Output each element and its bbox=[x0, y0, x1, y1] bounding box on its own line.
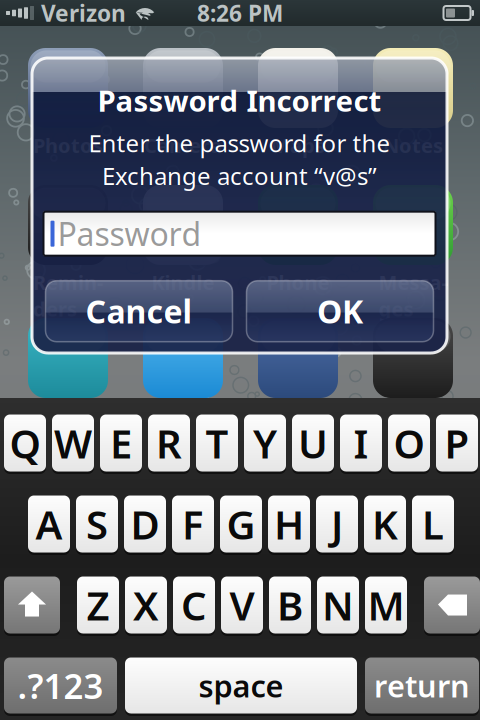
button[interactable]: B bbox=[269, 575, 311, 635]
staticText: Photos bbox=[33, 132, 103, 159]
button[interactable]: J bbox=[316, 494, 358, 554]
button[interactable]: S bbox=[76, 494, 118, 554]
button[interactable]: space bbox=[125, 656, 357, 715]
button[interactable]: Cancel bbox=[45, 281, 232, 342]
staticText: U bbox=[298, 416, 328, 469]
button[interactable]: G bbox=[220, 494, 262, 554]
button[interactable]: Shift bbox=[4, 575, 60, 635]
button[interactable]: D bbox=[124, 494, 166, 554]
staticText: Y bbox=[253, 416, 277, 469]
staticText: Messages bbox=[378, 269, 447, 322]
staticText: K bbox=[372, 497, 398, 550]
staticText: .?123 bbox=[17, 662, 103, 708]
button[interactable]: T bbox=[196, 413, 238, 473]
button[interactable]: X bbox=[125, 575, 167, 635]
staticText: Verizon bbox=[41, 0, 126, 28]
button[interactable]: K bbox=[364, 494, 406, 554]
button[interactable]: W bbox=[52, 413, 94, 473]
staticText: return bbox=[374, 665, 470, 706]
button[interactable]: L bbox=[412, 494, 454, 554]
staticText: Phone bbox=[266, 269, 329, 296]
staticText: A bbox=[35, 497, 62, 550]
button[interactable]: N bbox=[317, 575, 359, 635]
staticText: Q bbox=[9, 416, 40, 469]
staticText: Camera bbox=[144, 132, 222, 159]
staticText: Facebook bbox=[259, 402, 336, 455]
staticText: Notes bbox=[383, 132, 443, 159]
staticText: space bbox=[198, 665, 283, 706]
button[interactable]: Z bbox=[77, 575, 119, 635]
staticText: D bbox=[130, 497, 159, 550]
staticText: X bbox=[133, 578, 159, 631]
staticText: Exchange account “v@s” bbox=[102, 160, 377, 192]
button[interactable]: return bbox=[365, 656, 479, 715]
staticText: G bbox=[226, 497, 255, 550]
staticText: S bbox=[86, 497, 108, 550]
staticText: Twitter bbox=[146, 402, 219, 429]
staticText: P bbox=[444, 416, 469, 469]
button[interactable]: V bbox=[221, 575, 263, 635]
staticText: Password bbox=[57, 212, 201, 255]
staticText: Enter the password for the bbox=[88, 127, 390, 159]
button[interactable]: I bbox=[340, 413, 382, 473]
staticText: T bbox=[205, 416, 228, 469]
staticText: R bbox=[156, 416, 182, 469]
staticText: C bbox=[181, 578, 207, 631]
staticText: M bbox=[367, 578, 404, 631]
button[interactable]: U bbox=[292, 413, 334, 473]
staticText: Z bbox=[86, 578, 109, 631]
button[interactable]: C bbox=[173, 575, 215, 635]
staticText: Maps bbox=[271, 132, 325, 159]
button[interactable]: H bbox=[268, 494, 310, 554]
staticText: E bbox=[110, 416, 132, 469]
staticText: F bbox=[182, 497, 204, 550]
staticText: L bbox=[422, 497, 444, 550]
button[interactable]: .?123 bbox=[4, 656, 117, 715]
button[interactable]: Y bbox=[244, 413, 286, 473]
staticText: OK bbox=[317, 290, 363, 332]
button[interactable]: E bbox=[100, 413, 142, 473]
staticText: I bbox=[353, 416, 368, 469]
button[interactable]: O bbox=[388, 413, 430, 473]
staticText: H bbox=[274, 497, 304, 550]
staticText: O bbox=[393, 416, 424, 469]
staticText: Google bbox=[377, 402, 448, 429]
staticText: W bbox=[54, 416, 92, 469]
staticText: Cancel bbox=[85, 290, 192, 332]
staticText: J bbox=[331, 497, 343, 550]
button[interactable]: F bbox=[172, 494, 214, 554]
staticText: Kindle bbox=[151, 269, 214, 296]
button[interactable]: A bbox=[28, 494, 70, 554]
staticText: 8:26 PM bbox=[197, 0, 283, 28]
button[interactable]: P bbox=[436, 413, 478, 473]
staticText: N bbox=[322, 578, 354, 631]
staticText: GroupMe bbox=[34, 402, 102, 455]
staticText: Password Incorrect bbox=[97, 81, 381, 120]
button[interactable]: M bbox=[365, 575, 407, 635]
button[interactable]: Delete bbox=[424, 575, 480, 635]
button[interactable]: Q bbox=[4, 413, 46, 473]
staticText: V bbox=[229, 578, 254, 631]
staticText: Reminders bbox=[33, 269, 103, 322]
staticText: B bbox=[277, 578, 303, 631]
button[interactable]: R bbox=[148, 413, 190, 473]
button[interactable]: OK bbox=[246, 281, 433, 342]
